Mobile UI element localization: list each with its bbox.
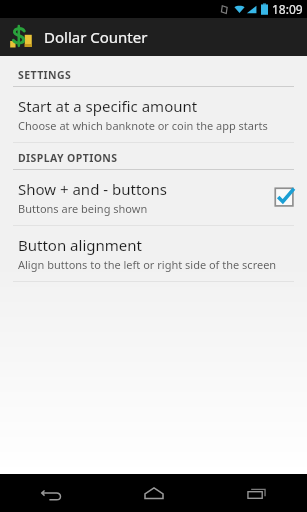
button[interactable]: Recent apps	[205, 474, 307, 512]
staticText: Start at a specific amount	[18, 96, 198, 116]
staticText: Align buttons to the left or right side …	[18, 257, 277, 272]
button[interactable]: Back	[0, 474, 103, 512]
staticText: 18:09	[272, 1, 303, 17]
button[interactable]: Home	[103, 474, 205, 512]
staticText: Button alignment	[18, 235, 142, 255]
button[interactable]: Start at a specific amount	[0, 87, 307, 143]
button[interactable]: Button alignment	[0, 226, 307, 282]
staticText: Buttons are being shown	[18, 201, 148, 216]
button[interactable]: Dollar Counter	[0, 18, 307, 56]
button[interactable]: Show plus and minus buttons toggle	[274, 187, 295, 208]
staticText: Show + and - buttons	[18, 179, 167, 199]
staticText: DISPLAY OPTIONS	[18, 151, 118, 165]
staticText: Choose at which banknote or coin the app…	[18, 118, 268, 133]
button[interactable]: Show + and - buttons	[0, 170, 307, 226]
staticText: Dollar Counter	[44, 27, 148, 47]
staticText: SETTINGS	[18, 68, 72, 82]
